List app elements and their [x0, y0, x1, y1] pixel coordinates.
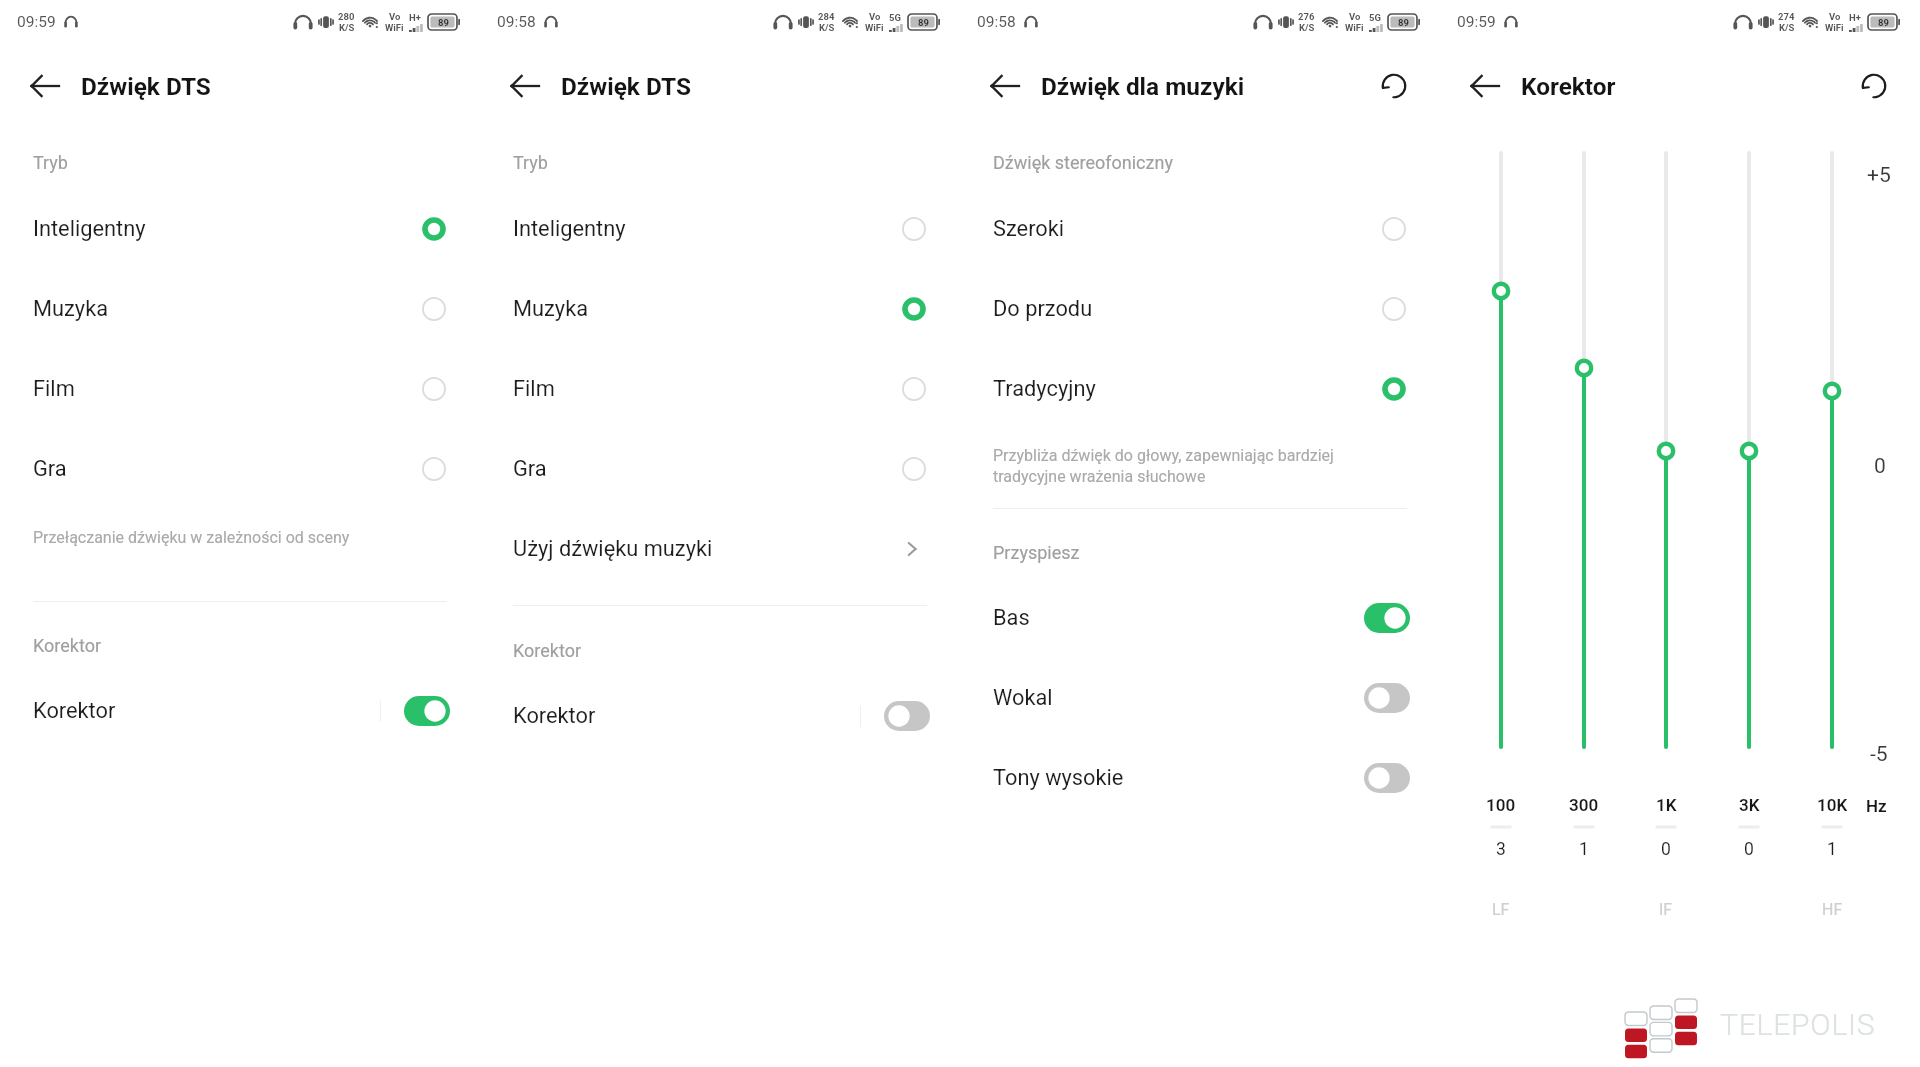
staticText: K/S [819, 22, 835, 33]
staticText: 09:59 [1457, 13, 1496, 31]
staticText: Dźwięk DTS [561, 72, 691, 101]
staticText: 3 [1496, 839, 1506, 860]
staticText: Tradycyjny [993, 376, 1096, 402]
staticText: Szeroki [993, 216, 1065, 242]
staticText: 1K [1656, 795, 1677, 815]
button[interactable]: Tradycyjny [960, 349, 1440, 429]
staticText: Inteligentny [33, 216, 146, 242]
button[interactable]: Do przodu [960, 269, 1440, 349]
button[interactable]: Muzyka [0, 269, 480, 349]
button[interactable]: 1K Hz band, 0 dB [1642, 141, 1690, 759]
staticText: 1 [1827, 839, 1837, 860]
staticText: 89 [918, 17, 929, 28]
button[interactable]: Gra [0, 429, 480, 509]
staticText: Przyspiesz [993, 542, 1080, 563]
staticText: 5G [889, 12, 901, 23]
staticText: Korektor [33, 698, 116, 724]
button[interactable]: Reset [1372, 64, 1416, 108]
staticText: K/S [339, 22, 355, 33]
staticText: Korektor [513, 703, 596, 729]
staticText: -5 [1870, 742, 1888, 767]
staticText: Przełączanie dźwięku w zależności od sce… [33, 528, 350, 547]
staticText: Dźwięk dla muzyki [1041, 72, 1245, 101]
staticText: Dźwięk DTS [81, 72, 211, 101]
button[interactable]: Bas [960, 578, 1440, 658]
staticText: Muzyka [33, 296, 109, 322]
staticText: Korektor [513, 640, 582, 661]
staticText: Tryb [33, 152, 68, 173]
staticText: Gra [513, 456, 547, 482]
staticText: K/S [1779, 22, 1795, 33]
staticText: 10K [1817, 795, 1848, 815]
staticText: 0 [1744, 839, 1754, 860]
staticText: Vo [389, 11, 401, 22]
staticText: IF [1659, 900, 1673, 919]
staticText: Vo [869, 11, 881, 22]
button[interactable]: Użyj dźwięku muzyki [480, 509, 960, 589]
staticText: H+ [1849, 12, 1861, 23]
staticText: 89 [1878, 17, 1889, 28]
staticText: 1 [1579, 839, 1589, 860]
staticText: WiFi [865, 22, 884, 33]
button[interactable]: Gra [480, 429, 960, 509]
staticText: TELEPOLIS [1720, 1007, 1876, 1042]
staticText: 274 [1778, 11, 1795, 22]
staticText: K/S [1299, 22, 1315, 33]
staticText: H+ [409, 12, 421, 23]
button[interactable]: Reset [1852, 64, 1896, 108]
staticText: Film [33, 376, 75, 402]
staticText: 300 [1569, 795, 1599, 815]
staticText: 89 [1398, 17, 1409, 28]
button[interactable]: Tony wysokie [960, 738, 1440, 818]
button[interactable]: Muzyka [480, 269, 960, 349]
button[interactable]: Back [22, 63, 68, 109]
button[interactable]: Film [480, 349, 960, 429]
staticText: Wokal [993, 685, 1053, 711]
staticText: 3K [1739, 795, 1760, 815]
staticText: 0 [1661, 839, 1671, 860]
staticText: Muzyka [513, 296, 589, 322]
button[interactable]: Back [982, 63, 1028, 109]
button[interactable]: 10K Hz band, 1 dB [1808, 141, 1856, 759]
staticText: 09:58 [497, 13, 536, 31]
staticText: Użyj dźwięku muzyki [513, 536, 713, 562]
staticText: Film [513, 376, 555, 402]
button[interactable]: Wokal [960, 658, 1440, 738]
staticText: LF [1492, 900, 1510, 919]
button[interactable]: Korektor [0, 671, 480, 751]
staticText: HF [1822, 900, 1843, 919]
staticText: 100 [1486, 795, 1516, 815]
staticText: 5G [1369, 12, 1381, 23]
staticText: Vo [1829, 11, 1841, 22]
button[interactable]: Back [502, 63, 548, 109]
button[interactable]: Inteligentny [480, 189, 960, 269]
staticText: Korektor [33, 635, 102, 656]
staticText: Przybliża dźwięk do głowy, zapewniając b… [993, 446, 1334, 486]
button[interactable]: 3K Hz band, 0 dB [1725, 141, 1773, 759]
staticText: Korektor [1521, 72, 1616, 101]
staticText: WiFi [385, 22, 404, 33]
button[interactable]: Inteligentny [0, 189, 480, 269]
staticText: Hz [1866, 796, 1887, 816]
staticText: 280 [338, 11, 355, 22]
staticText: 0 [1874, 454, 1886, 479]
staticText: Dźwięk stereofoniczny [993, 152, 1173, 173]
staticText: 276 [1298, 11, 1315, 22]
button[interactable]: Film [0, 349, 480, 429]
button[interactable]: Korektor [480, 676, 960, 756]
staticText: Tryb [513, 152, 548, 173]
staticText: +5 [1867, 163, 1891, 188]
button[interactable]: 100 Hz band, 3 dB [1477, 141, 1525, 759]
staticText: Do przodu [993, 296, 1093, 322]
staticText: Inteligentny [513, 216, 626, 242]
staticText: Bas [993, 605, 1030, 631]
staticText: Vo [1349, 11, 1361, 22]
button[interactable]: 300 Hz band, 1 dB [1560, 141, 1608, 759]
button[interactable]: Back [1462, 63, 1508, 109]
button[interactable]: Szeroki [960, 189, 1440, 269]
staticText: WiFi [1825, 22, 1844, 33]
staticText: Tony wysokie [993, 765, 1124, 791]
staticText: Gra [33, 456, 67, 482]
staticText: 09:59 [17, 13, 56, 31]
staticText: 89 [438, 17, 449, 28]
